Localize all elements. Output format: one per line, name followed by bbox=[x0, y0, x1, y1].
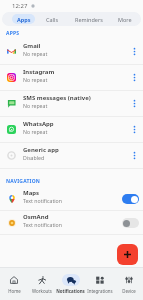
staticText: Gmail bbox=[23, 42, 41, 50]
staticText: Text notification bbox=[23, 221, 62, 228]
staticText: No repeat bbox=[23, 76, 48, 83]
button[interactable]: More options bbox=[125, 65, 143, 90]
staticText: SMS messages (native) bbox=[23, 94, 91, 102]
button[interactable]: Calls bbox=[37, 14, 68, 24]
staticText: APPS bbox=[6, 30, 20, 37]
button[interactable]: More bbox=[110, 14, 140, 24]
button[interactable]: More options bbox=[125, 143, 143, 168]
staticText: NAVIGATION bbox=[6, 178, 41, 185]
button[interactable]: Device bbox=[114, 268, 143, 300]
staticText: No repeat bbox=[23, 128, 48, 135]
button[interactable]: Integrations bbox=[85, 268, 114, 300]
staticText: WhatsApp bbox=[23, 120, 54, 128]
staticText: Generic app bbox=[23, 146, 59, 154]
button[interactable]: Enable OsmAnd bbox=[117, 211, 143, 234]
staticText: Calls bbox=[46, 16, 59, 23]
staticText: Reminders bbox=[75, 16, 103, 23]
button[interactable]: Reminders bbox=[70, 14, 108, 24]
staticText: Text notification bbox=[23, 197, 62, 204]
button[interactable]: Home bbox=[0, 268, 28, 300]
button[interactable]: More options bbox=[125, 39, 143, 64]
staticText: Integrations bbox=[87, 288, 113, 294]
staticText: Notifications bbox=[56, 288, 85, 294]
staticText: Device bbox=[122, 288, 136, 294]
staticText: No repeat bbox=[23, 102, 48, 109]
staticText: Home bbox=[8, 288, 21, 294]
button[interactable]: Apps bbox=[12, 14, 35, 24]
button[interactable]: Notifications bbox=[56, 268, 85, 300]
staticText: 12:27 bbox=[12, 2, 28, 10]
button[interactable]: Maps bbox=[0, 187, 143, 210]
button[interactable]: More options bbox=[125, 117, 143, 142]
button[interactable]: Generic app bbox=[0, 143, 143, 168]
button[interactable]: SMS messages (native) bbox=[0, 91, 143, 116]
staticText: Maps bbox=[23, 189, 40, 197]
button[interactable]: Gmail bbox=[0, 39, 143, 64]
button[interactable]: OsmAnd bbox=[0, 211, 143, 234]
staticText: More bbox=[118, 16, 132, 23]
button[interactable]: Add bbox=[117, 244, 138, 265]
button[interactable]: More options bbox=[125, 91, 143, 116]
staticText: Apps bbox=[17, 16, 31, 23]
button[interactable]: Disable Maps bbox=[117, 187, 143, 210]
staticText: Disabled bbox=[23, 154, 45, 161]
staticText: OsmAnd bbox=[23, 213, 49, 221]
button[interactable]: Workouts bbox=[28, 268, 56, 300]
staticText: Instagram bbox=[23, 68, 55, 76]
button[interactable]: Instagram bbox=[0, 65, 143, 90]
staticText: Workouts bbox=[32, 288, 52, 294]
staticText: No repeat bbox=[23, 50, 48, 57]
button[interactable]: WhatsApp bbox=[0, 117, 143, 142]
